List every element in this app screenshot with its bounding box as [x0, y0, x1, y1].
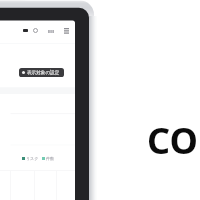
staticText: 件数 — [46, 156, 54, 161]
button[interactable]: Badge — [23, 29, 28, 32]
button[interactable]: List view — [64, 28, 69, 34]
button[interactable]: More — [48, 30, 54, 33]
button[interactable]: Notifications — [33, 28, 38, 33]
staticText: リスク — [26, 156, 39, 161]
staticText: 表示対象の設定 — [27, 70, 60, 76]
staticText: CO — [147, 116, 198, 165]
button[interactable]: 表示対象の設定 — [19, 68, 64, 77]
